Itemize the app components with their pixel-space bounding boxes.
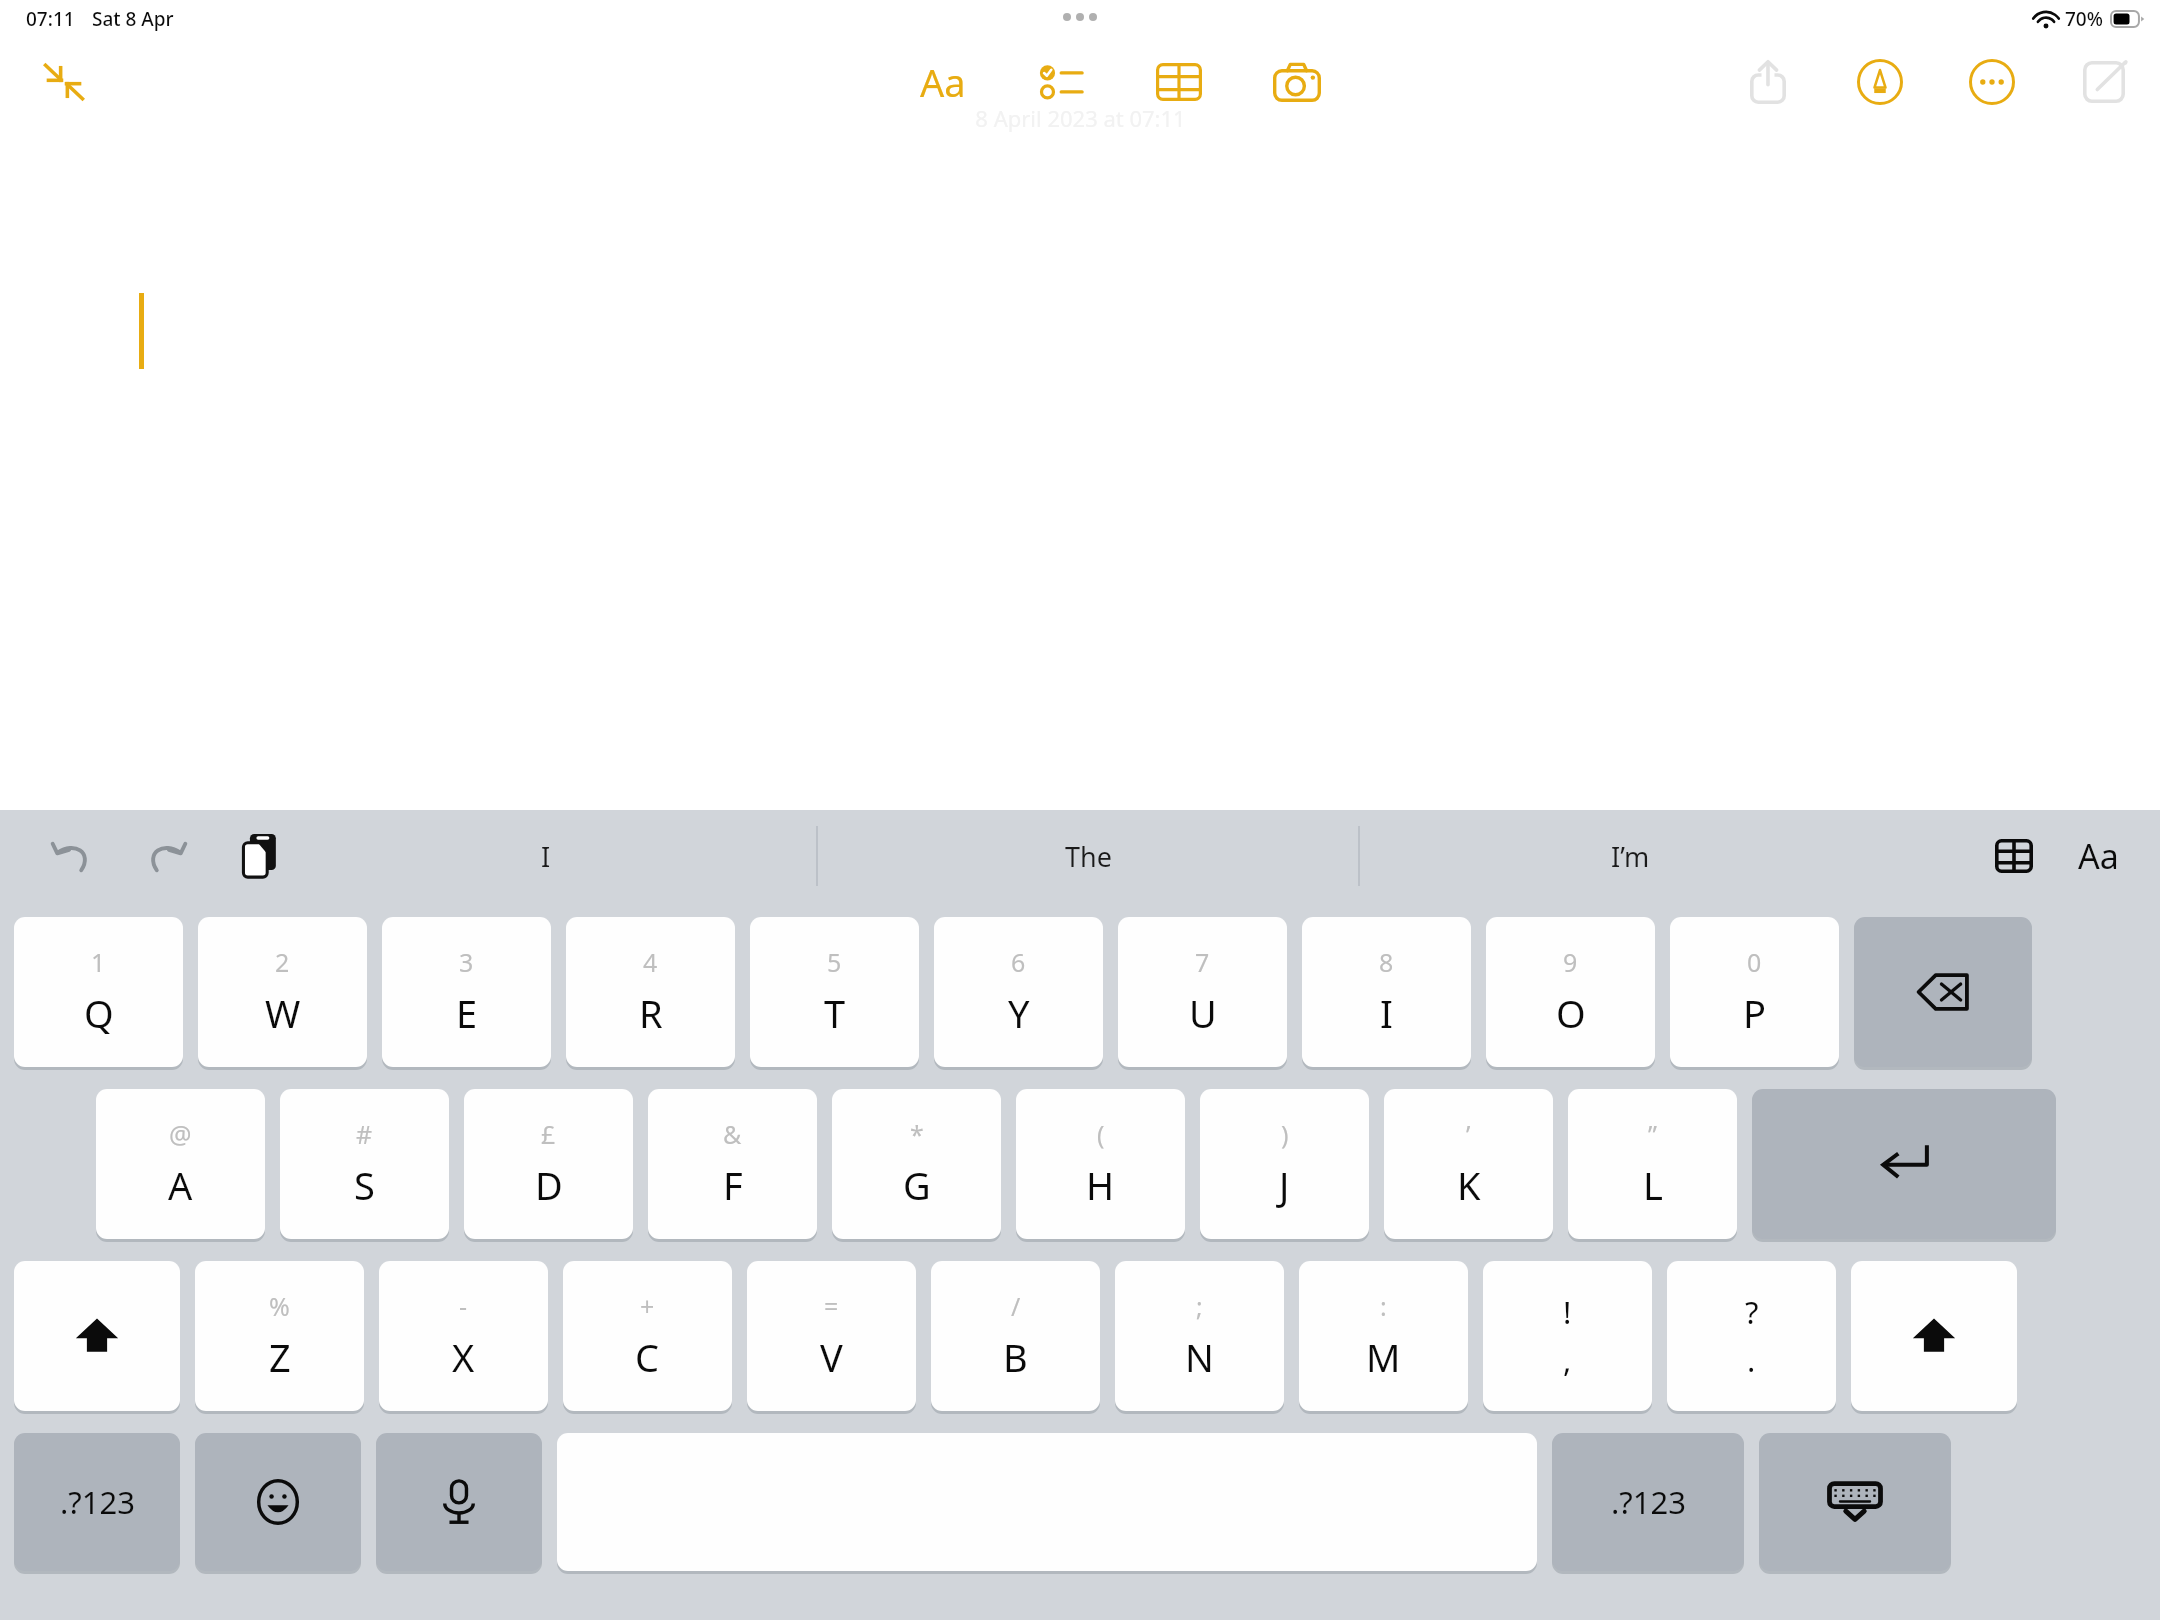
button[interactable]: Paste [232,828,288,884]
button[interactable]: * [832,1089,1001,1239]
button[interactable]: Aa [911,54,975,110]
staticText: L [1643,1159,1663,1211]
button[interactable]: 3 [382,917,551,1067]
button[interactable]: The [818,810,1358,902]
button[interactable]: + [563,1261,732,1411]
button[interactable]: - [379,1261,548,1411]
button[interactable]: .?123 [1552,1433,1744,1571]
staticText: M [1366,1331,1401,1383]
staticText: . [1747,1339,1756,1381]
staticText: : [1380,1289,1387,1323]
button[interactable]: I’m [1360,810,1900,902]
staticText: P [1743,987,1766,1039]
staticText: , [1563,1339,1572,1381]
button[interactable]: Dictate [376,1433,542,1571]
button[interactable]: Share [1738,52,1798,112]
button[interactable]: ! [1483,1261,1652,1411]
button[interactable]: 8 [1302,917,1471,1067]
button[interactable]: 1 [14,917,183,1067]
button[interactable]: 7 [1118,917,1287,1067]
button[interactable]: Shift [14,1261,180,1411]
staticText: £ [541,1117,556,1151]
button[interactable]: @ [96,1089,265,1239]
staticText: .?123 [1611,1481,1686,1523]
button[interactable]: 2 [198,917,367,1067]
button[interactable]: Undo [44,828,100,884]
staticText: * [910,1117,924,1151]
button[interactable]: Backspace [1854,917,2032,1067]
staticText: I [1380,987,1393,1039]
button[interactable]: ” [1568,1089,1737,1239]
staticText: 1 [91,945,106,979]
button[interactable]: 5 [750,917,919,1067]
staticText: Sat 8 Apr [92,6,174,32]
staticText: The [1065,838,1112,875]
staticText: Aa [2078,833,2119,879]
button[interactable]: 4 [566,917,735,1067]
staticText: O [1556,987,1586,1039]
staticText: 2 [275,945,290,979]
staticText: + [640,1289,655,1323]
staticText: I’m [1611,838,1650,875]
staticText: @ [169,1117,192,1151]
staticText: 4 [643,945,658,979]
staticText: - [459,1289,468,1323]
button[interactable]: Insert table [1986,828,2042,884]
staticText: E [456,987,478,1039]
button[interactable]: Checklist [1029,54,1093,110]
button[interactable]: Markup [1850,52,1910,112]
staticText: 6 [1011,945,1026,979]
button[interactable]: New note [2074,52,2134,112]
button[interactable]: Emoji [195,1433,361,1571]
staticText: W [265,987,301,1039]
button[interactable]: Redo [138,828,194,884]
staticText: & [723,1117,742,1151]
staticText: ! [1563,1291,1572,1333]
button[interactable]: .?123 [14,1433,180,1571]
button[interactable]: £ [464,1089,633,1239]
staticText: 8 April 2023 at 07:11 [975,103,1186,133]
staticText: S [354,1159,375,1211]
staticText: R [639,987,663,1039]
button[interactable]: % [195,1261,364,1411]
staticText: X [452,1331,475,1383]
staticText: 07:11 [26,6,75,32]
button[interactable]: Camera [1265,54,1329,110]
button[interactable]: More options [1962,52,2022,112]
button[interactable]: ? [1667,1261,1836,1411]
staticText: Q [84,987,114,1039]
button[interactable]: # [280,1089,449,1239]
button[interactable]: Table [1147,54,1211,110]
button[interactable]: ’ [1384,1089,1553,1239]
button[interactable]: Aa [2066,828,2130,884]
button[interactable]: I [276,810,816,902]
staticText: Aa [920,56,966,108]
staticText: ? [1745,1291,1759,1333]
button[interactable]: Hide keyboard [1759,1433,1951,1571]
staticText: T [824,987,846,1039]
staticText: Z [269,1331,291,1383]
button[interactable]: Return [1752,1089,2056,1239]
staticText: C [635,1331,660,1383]
staticText: % [269,1289,290,1323]
staticText: 7 [1195,945,1210,979]
staticText: ( [1097,1117,1105,1151]
button[interactable]: ( [1016,1089,1185,1239]
staticText: = [824,1289,839,1323]
button[interactable]: 9 [1486,917,1655,1067]
staticText: B [1003,1331,1028,1383]
button[interactable]: = [747,1261,916,1411]
button[interactable]: ) [1200,1089,1369,1239]
button[interactable]: & [648,1089,817,1239]
staticText: ’ [1466,1117,1471,1151]
staticText: 5 [827,945,842,979]
button[interactable]: Shift [1851,1261,2017,1411]
button[interactable]: / [931,1261,1100,1411]
button[interactable]: Collapse [36,54,92,110]
button[interactable]: 0 [1670,917,1839,1067]
staticText: V [820,1331,843,1383]
button[interactable]: 6 [934,917,1103,1067]
button[interactable]: : [1299,1261,1468,1411]
button[interactable]: ; [1115,1261,1284,1411]
